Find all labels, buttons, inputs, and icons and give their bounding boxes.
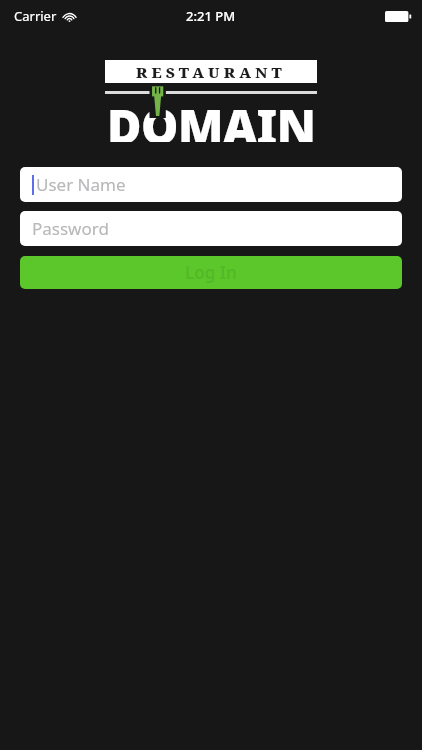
button[interactable]: Log In bbox=[20, 256, 402, 289]
staticText: RESTAURANT bbox=[136, 62, 287, 82]
button[interactable]: User Name bbox=[20, 167, 402, 202]
button[interactable]: Password bbox=[20, 211, 402, 246]
staticText: User Name bbox=[36, 173, 126, 196]
staticText: DOMAIN bbox=[107, 94, 316, 142]
staticText: Carrier bbox=[14, 7, 57, 25]
staticText: 2:21 PM bbox=[186, 7, 236, 25]
staticText: Log In bbox=[185, 261, 237, 284]
staticText: Password bbox=[32, 217, 109, 240]
